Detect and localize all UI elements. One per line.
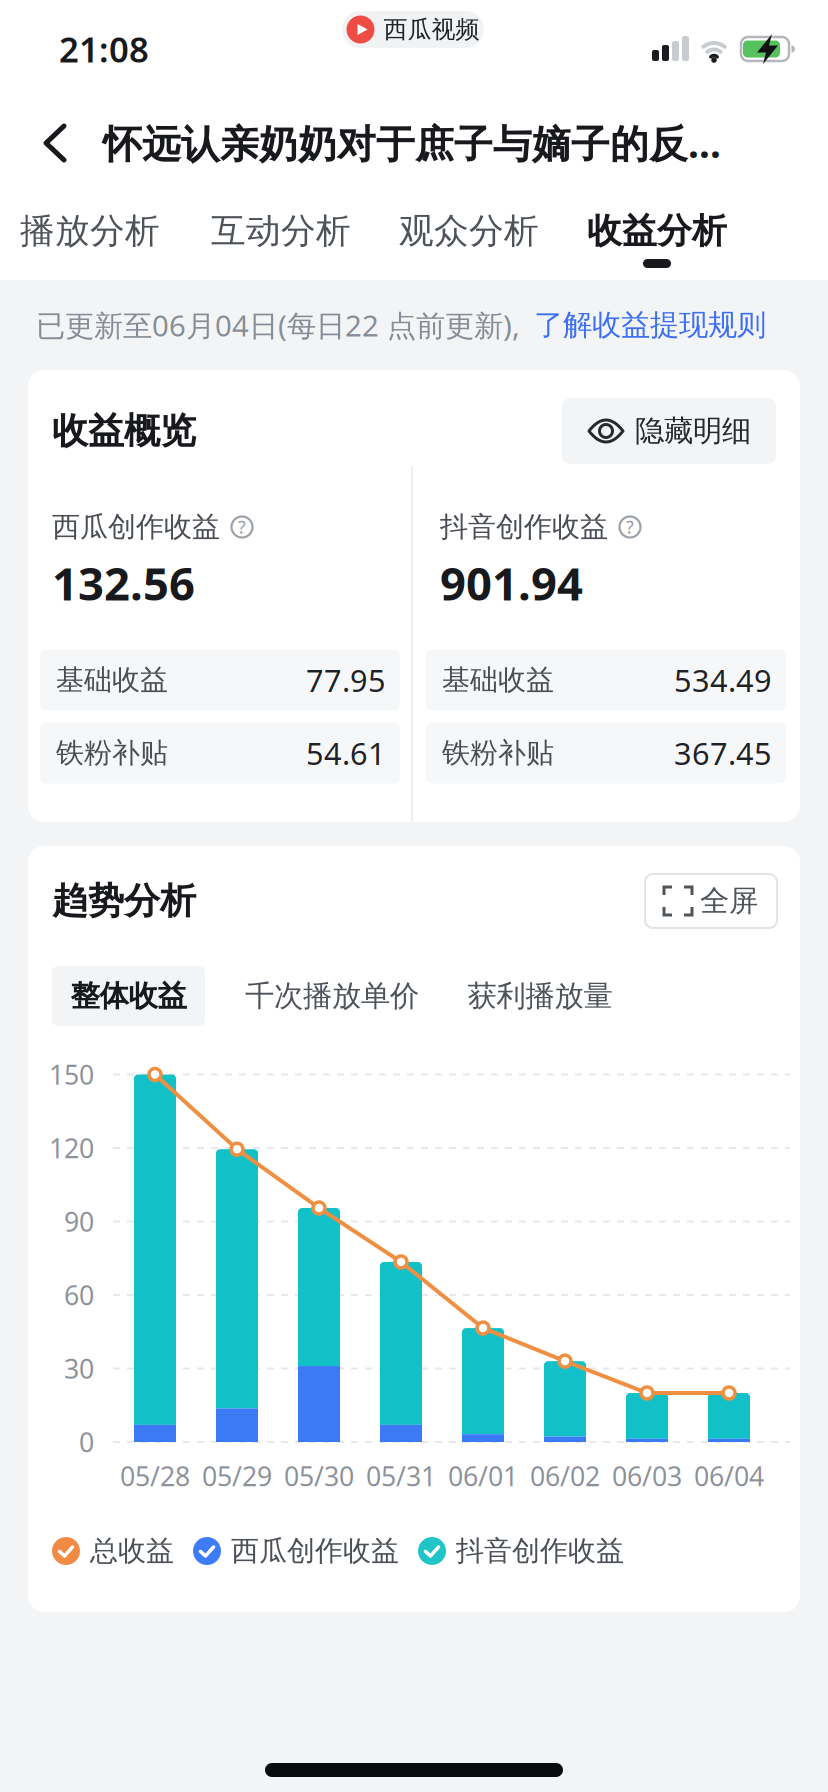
staticText: ? bbox=[238, 515, 246, 538]
staticText: 西瓜创作收益 bbox=[52, 510, 220, 544]
staticText: 367.45 bbox=[674, 733, 772, 773]
staticText: 06/04 bbox=[694, 1458, 764, 1494]
staticText: 132.56 bbox=[52, 553, 195, 613]
staticText: 全屏 bbox=[700, 883, 758, 919]
staticText: 整体收益 bbox=[70, 978, 186, 1014]
staticText: 趋势分析 bbox=[52, 879, 196, 923]
staticText: 基础收益 bbox=[56, 663, 168, 697]
staticText: 已更新至06月04日(每日22 点前更新), bbox=[36, 305, 528, 344]
staticText: 播放分析 bbox=[20, 210, 160, 252]
staticText: 21:08 bbox=[59, 26, 149, 72]
staticText: 534.49 bbox=[674, 660, 772, 700]
staticText: 隐藏明细 bbox=[635, 413, 751, 449]
staticText: 获利播放量 bbox=[467, 978, 612, 1014]
staticText: 05/28 bbox=[120, 1458, 190, 1494]
staticText: 铁粉补贴 bbox=[56, 736, 168, 770]
staticText: 05/30 bbox=[284, 1458, 354, 1494]
staticText: 千次播放单价 bbox=[245, 978, 419, 1014]
staticText: 怀远认亲奶奶对于庶子与嫡子的反... bbox=[103, 117, 721, 169]
staticText: 西瓜创作收益 bbox=[231, 1534, 399, 1568]
staticText: 05/31 bbox=[366, 1458, 436, 1494]
staticText: 铁粉补贴 bbox=[442, 736, 554, 770]
staticText: ? bbox=[626, 515, 634, 538]
staticText: 77.95 bbox=[306, 660, 386, 700]
staticText: 90 bbox=[64, 1204, 94, 1239]
staticText: 0 bbox=[79, 1424, 94, 1460]
staticText: 总收益 bbox=[90, 1534, 174, 1568]
staticText: 抖音创作收益 bbox=[440, 510, 608, 544]
staticText: 抖音创作收益 bbox=[456, 1534, 624, 1568]
staticText: 150 bbox=[49, 1057, 94, 1092]
staticText: 06/03 bbox=[612, 1458, 682, 1494]
staticText: 06/01 bbox=[448, 1458, 518, 1494]
staticText: 05/29 bbox=[202, 1458, 272, 1494]
staticText: 60 bbox=[64, 1277, 94, 1313]
staticText: 互动分析 bbox=[211, 210, 351, 252]
staticText: 收益分析 bbox=[587, 210, 727, 252]
staticText: 901.94 bbox=[440, 553, 583, 613]
staticText: 基础收益 bbox=[442, 663, 554, 697]
staticText: 收益概览 bbox=[52, 409, 196, 453]
staticText: 120 bbox=[49, 1130, 94, 1166]
staticText: 观众分析 bbox=[399, 210, 539, 252]
staticText: 了解收益提现规则 bbox=[534, 307, 766, 343]
staticText: 06/02 bbox=[530, 1458, 600, 1494]
staticText: 54.61 bbox=[306, 733, 386, 773]
staticText: 西瓜视频 bbox=[383, 15, 479, 44]
staticText: 30 bbox=[64, 1351, 94, 1386]
